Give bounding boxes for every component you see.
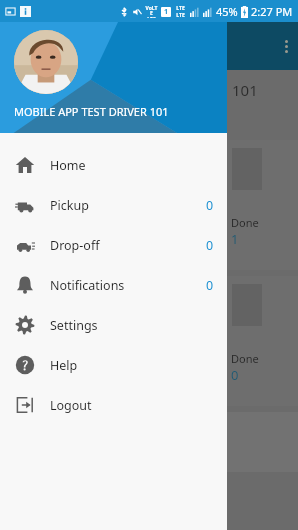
button[interactable]: Drop-off (0, 225, 227, 265)
staticText: Drop-off (50, 237, 206, 254)
staticText: 0 (206, 197, 214, 214)
staticText: LTE (176, 12, 185, 18)
staticText: Home (50, 157, 227, 174)
staticText: VoLTE (145, 5, 158, 16)
staticText: Pickup (50, 197, 206, 214)
staticText: 0 (231, 366, 239, 384)
button[interactable]: Pickup (0, 185, 227, 225)
staticText: Done (231, 351, 259, 366)
button[interactable]: Logout (0, 385, 227, 425)
staticText: 0 (206, 237, 214, 254)
button[interactable]: Home (0, 145, 227, 185)
button[interactable]: Help (0, 345, 227, 385)
staticText: 45% (216, 4, 238, 19)
staticText: LTE (147, 16, 156, 18)
button[interactable]: Notifications (0, 265, 227, 305)
staticText: 101 (232, 80, 258, 100)
staticText: 1 (164, 7, 169, 17)
staticText: Help (50, 357, 227, 374)
staticText: Done (231, 215, 259, 230)
staticText: 1 (231, 230, 239, 248)
button[interactable]: Settings (0, 305, 227, 345)
staticText: MOBILE APP TEST DRIVER 101 (14, 104, 169, 119)
staticText: Notifications (50, 277, 206, 294)
staticText: 0 (206, 277, 214, 294)
staticText: LTE (176, 5, 185, 12)
staticText: Settings (50, 317, 227, 334)
staticText: Logout (50, 397, 227, 414)
staticText: 2:27 PM (251, 4, 293, 19)
